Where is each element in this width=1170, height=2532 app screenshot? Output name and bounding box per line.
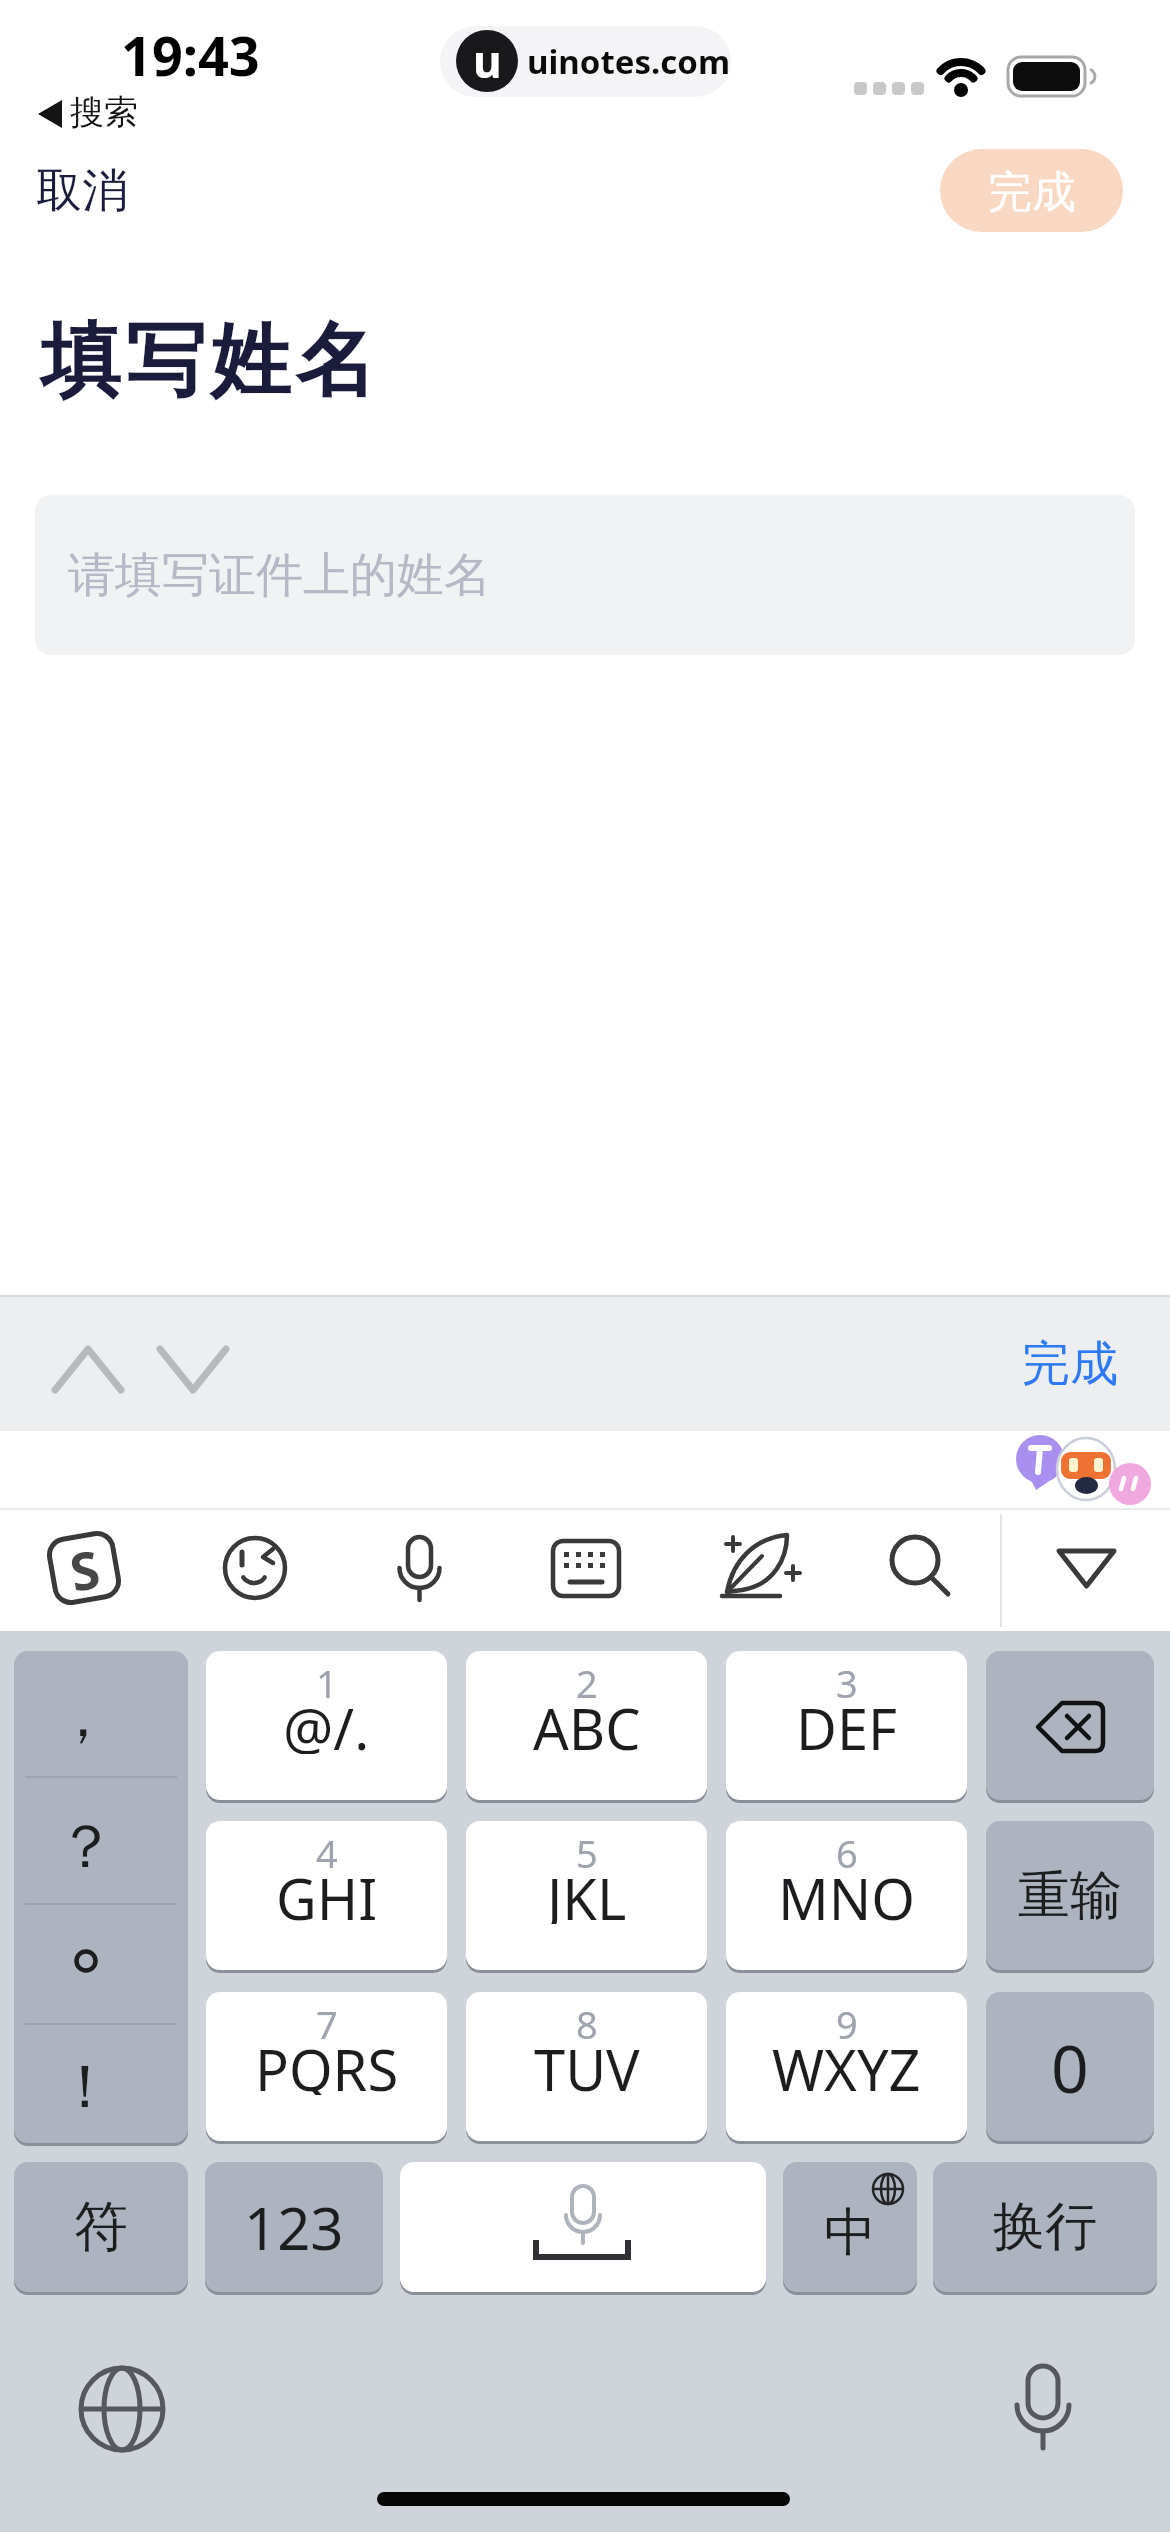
staticText: 3 [836,1657,858,1707]
staticText: DEF [796,1690,898,1754]
staticText: ， [54,1680,112,1753]
staticText: 1 [316,1657,338,1707]
button[interactable] [206,1651,447,1800]
button[interactable] [466,1651,707,1800]
staticText: 8 [576,1998,598,2048]
staticText: 换行 [993,2194,1097,2260]
staticText: 请填写证件上的姓名 [68,546,491,605]
button[interactable] [986,1821,1154,1970]
button[interactable] [1046,1528,1126,1608]
staticText: 填写姓名 [38,311,378,412]
staticText: ABC [533,1690,641,1754]
button[interactable] [14,1651,188,2143]
staticText: uinotes.com [527,39,731,84]
button[interactable] [726,1651,967,1800]
button[interactable]: 完成 [990,1297,1150,1431]
staticText: TUV [534,2031,640,2095]
staticText: 6 [836,1827,858,1877]
staticText: JKL [547,1860,627,1924]
button[interactable] [379,1528,459,1608]
button[interactable] [466,1821,707,1970]
staticText: 5 [576,1827,598,1877]
button[interactable] [40,1330,140,1410]
staticText: S [64,1532,105,1604]
staticText: 搜索 [70,91,138,134]
staticText: ！ [55,2049,115,2125]
button[interactable]: 取消 [36,162,156,218]
button[interactable] [14,2162,188,2292]
staticText: 123 [244,2188,344,2267]
staticText: 中 [824,2200,876,2266]
staticText: 7 [316,1998,338,2048]
staticText: 19:43 [121,18,260,78]
staticText: 2 [576,1657,598,1707]
staticText: 完成 [1022,1334,1118,1394]
button[interactable] [400,2162,766,2292]
staticText: 完成 [988,165,1076,220]
staticText: PQRS [255,2031,399,2095]
button[interactable] [726,1821,967,1970]
button[interactable] [206,1821,447,1970]
staticText: 9 [836,1998,858,2048]
button[interactable] [986,1992,1154,2141]
button[interactable] [986,1651,1154,1800]
staticText: 4 [316,1827,338,1877]
staticText: WXYZ [772,2031,921,2095]
button[interactable] [150,1330,250,1410]
button[interactable] [205,2162,383,2292]
staticText: @/. [283,1690,370,1754]
button[interactable] [215,1528,295,1608]
staticText: ？ [56,1809,116,1885]
staticText: 取消 [36,162,128,218]
button[interactable] [546,1528,626,1608]
button[interactable] [44,1528,124,1608]
button[interactable] [716,1528,796,1608]
staticText: GHI [276,1860,378,1924]
button[interactable] [940,149,1123,232]
staticText: MNO [778,1860,916,1924]
button[interactable] [783,2162,917,2292]
button[interactable] [466,1992,707,2141]
staticText: 重输 [1018,1863,1122,1929]
button[interactable] [933,2162,1157,2292]
staticText: u [473,31,502,91]
staticText: 0 [1051,2022,1089,2112]
button[interactable] [726,1992,967,2141]
button[interactable] [35,495,1135,655]
button[interactable] [206,1992,447,2141]
button[interactable] [880,1528,960,1608]
button[interactable] [440,26,731,97]
staticText: 符 [74,2193,128,2261]
